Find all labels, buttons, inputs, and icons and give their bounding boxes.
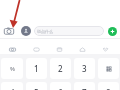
staticText: 6 [58, 87, 63, 90]
button[interactable]: 2 [50, 58, 71, 79]
staticText: 3 [82, 63, 87, 74]
button[interactable]: 说点什么 [34, 26, 104, 36]
staticText: 5 [34, 87, 39, 90]
button[interactable]: Favorite [94, 39, 117, 54]
button[interactable]: % [1, 58, 23, 79]
button[interactable]: Add [106, 25, 118, 37]
button[interactable]: Camera [3, 25, 15, 37]
staticText: 1 [34, 63, 39, 74]
button[interactable]: 1 [26, 58, 47, 79]
button[interactable] [98, 58, 119, 79]
staticText: % [10, 65, 15, 73]
button[interactable]: 8 [98, 82, 119, 90]
button[interactable]: Card [71, 39, 94, 54]
button[interactable]: Sticker [21, 26, 31, 36]
staticText: 7 [82, 87, 87, 90]
button[interactable]: 3 [74, 58, 95, 79]
button[interactable]: 5 [26, 82, 47, 90]
button[interactable]: 7 [74, 82, 95, 90]
staticText: 2 [58, 63, 63, 74]
button[interactable]: 4 [1, 82, 23, 90]
button[interactable]: Gallery [48, 39, 71, 54]
button[interactable]: Emoji [24, 39, 48, 54]
staticText: 说点什么 [37, 29, 53, 34]
staticText: 4 [10, 87, 15, 90]
staticText: 8 [106, 87, 111, 90]
button[interactable]: 6 [50, 82, 71, 90]
button[interactable]: Voice [0, 39, 24, 54]
